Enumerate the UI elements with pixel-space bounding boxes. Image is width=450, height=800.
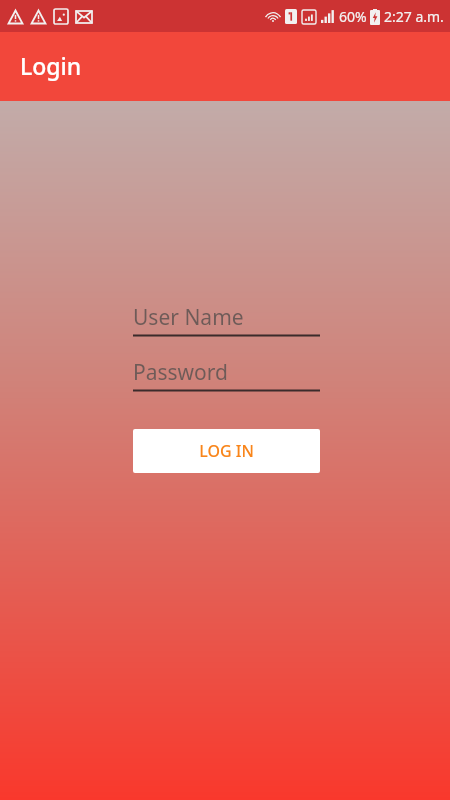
button[interactable]: LOG IN xyxy=(133,429,320,473)
staticText: 60% xyxy=(339,7,367,26)
staticText: Login xyxy=(20,50,82,81)
staticText: 2:27 a.m. xyxy=(384,7,444,26)
button[interactable]: User Name xyxy=(133,300,320,337)
button[interactable]: Password xyxy=(133,355,320,392)
staticText: LOG IN xyxy=(199,440,254,462)
staticText: User Name xyxy=(133,303,244,332)
staticText: Password xyxy=(133,358,228,387)
